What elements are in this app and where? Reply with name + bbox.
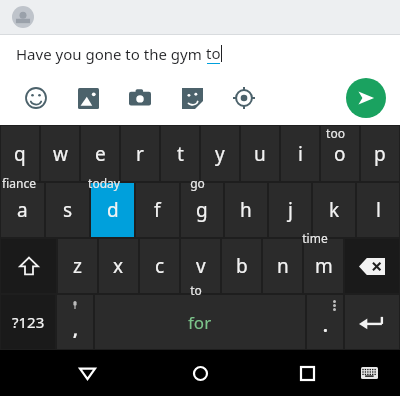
button[interactable]: a bbox=[1, 183, 44, 237]
staticText: f bbox=[154, 197, 161, 223]
button[interactable]: Emoji bbox=[10, 72, 62, 124]
button[interactable]: ?123 bbox=[1, 295, 55, 349]
staticText: fiance bbox=[2, 175, 36, 191]
button[interactable]: p bbox=[361, 126, 399, 181]
button[interactable]: u bbox=[241, 126, 279, 181]
staticText: g bbox=[196, 197, 208, 223]
button[interactable]: y bbox=[201, 126, 239, 181]
button[interactable]: o bbox=[321, 126, 359, 181]
staticText: w bbox=[53, 141, 68, 167]
staticText: e bbox=[95, 141, 106, 167]
button[interactable]: f bbox=[136, 183, 179, 237]
staticText: q bbox=[14, 141, 26, 167]
button[interactable]: Gallery bbox=[62, 72, 114, 124]
staticText: a bbox=[17, 197, 28, 223]
staticText: u bbox=[254, 141, 266, 167]
button[interactable]: h bbox=[225, 183, 267, 237]
staticText: x bbox=[113, 253, 124, 279]
button[interactable]: g bbox=[181, 183, 223, 237]
button[interactable]: Shift bbox=[1, 239, 56, 293]
staticText: p bbox=[374, 141, 386, 167]
staticText: ?123 bbox=[12, 312, 45, 332]
staticText: to bbox=[206, 43, 221, 63]
button[interactable]: s bbox=[46, 183, 89, 237]
button[interactable]: Enter bbox=[345, 295, 399, 349]
staticText: for bbox=[188, 311, 212, 334]
staticText: go bbox=[190, 175, 205, 191]
staticText: o bbox=[334, 141, 346, 167]
button[interactable]: Camera bbox=[114, 72, 166, 124]
button[interactable]: d bbox=[91, 183, 134, 237]
staticText: Have you gone to the gym bbox=[16, 44, 206, 64]
button[interactable]: Home bbox=[184, 357, 216, 389]
staticText: , bbox=[73, 318, 78, 341]
staticText: time bbox=[302, 230, 328, 246]
button[interactable]: Period and symbols bbox=[307, 295, 343, 349]
button[interactable]: m bbox=[304, 239, 343, 293]
staticText: k bbox=[329, 197, 340, 223]
button[interactable]: x bbox=[99, 239, 138, 293]
staticText: v bbox=[196, 253, 206, 279]
button[interactable]: k bbox=[313, 183, 355, 237]
button[interactable]: b bbox=[222, 239, 261, 293]
button[interactable]: Recents bbox=[292, 358, 322, 388]
staticText: too bbox=[326, 125, 345, 141]
staticText: t bbox=[177, 141, 184, 167]
staticText: h bbox=[240, 197, 252, 223]
staticText: j bbox=[288, 197, 293, 223]
button[interactable]: e bbox=[81, 126, 119, 181]
button[interactable]: t bbox=[161, 126, 199, 181]
button[interactable]: v bbox=[181, 239, 220, 293]
staticText: . bbox=[323, 314, 328, 337]
button[interactable]: Sticker bbox=[166, 72, 218, 124]
button[interactable]: Location bbox=[218, 72, 270, 124]
staticText: c bbox=[155, 253, 165, 279]
staticText: l bbox=[376, 197, 381, 223]
button[interactable]: j bbox=[269, 183, 311, 237]
staticText: to bbox=[190, 282, 202, 298]
staticText: r bbox=[136, 141, 144, 167]
button[interactable]: Account avatar bbox=[12, 6, 34, 28]
staticText: n bbox=[277, 253, 289, 279]
button[interactable]: Backspace bbox=[345, 239, 399, 293]
button[interactable]: z bbox=[58, 239, 97, 293]
button[interactable]: Comma and voice input bbox=[57, 295, 93, 349]
staticText: y bbox=[215, 141, 225, 167]
staticText: s bbox=[63, 197, 73, 223]
button[interactable]: l bbox=[357, 183, 399, 237]
button[interactable]: r bbox=[121, 126, 159, 181]
staticText: d bbox=[107, 197, 119, 223]
button[interactable]: Send bbox=[346, 78, 386, 118]
button[interactable]: w bbox=[41, 126, 79, 181]
button[interactable]: Switch keyboard bbox=[354, 358, 384, 388]
button[interactable]: c bbox=[140, 239, 179, 293]
button[interactable]: Hide keyboard bbox=[72, 358, 102, 388]
button[interactable]: i bbox=[281, 126, 319, 181]
staticText: m bbox=[315, 253, 333, 279]
button[interactable]: q bbox=[1, 126, 39, 181]
button[interactable]: for bbox=[95, 295, 305, 349]
button[interactable]: n bbox=[263, 239, 302, 293]
staticText: today bbox=[88, 175, 120, 191]
staticText: i bbox=[298, 141, 303, 167]
staticText: z bbox=[73, 253, 82, 279]
staticText: b bbox=[236, 253, 248, 279]
